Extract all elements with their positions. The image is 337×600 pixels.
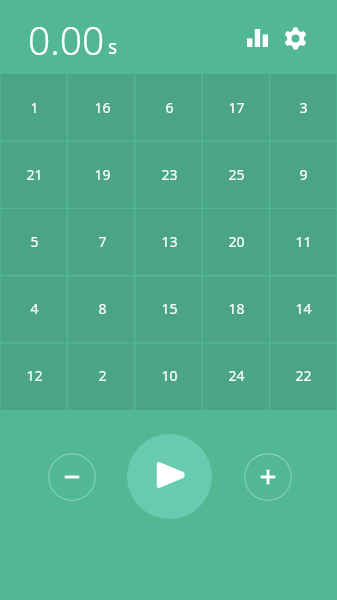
button[interactable]: Settings [279,21,311,53]
button[interactable]: 18 [203,276,270,343]
button[interactable]: 6 [136,74,203,142]
staticText: s [108,34,118,60]
staticText: 25 [228,165,245,184]
staticText: 7 [98,232,107,251]
button[interactable]: 4 [0,276,68,343]
button[interactable]: 14 [270,276,337,343]
button[interactable]: 10 [136,343,203,410]
staticText: 4 [30,299,39,318]
staticText: 14 [295,299,312,318]
staticText: 16 [94,98,111,117]
button[interactable]: 9 [270,142,337,209]
staticText: 3 [299,98,308,117]
staticText: 23 [161,165,178,184]
button[interactable]: 11 [270,209,337,276]
button[interactable]: 21 [0,142,68,209]
button[interactable]: 22 [270,343,337,410]
staticText: 9 [299,165,308,184]
button[interactable]: 23 [136,142,203,209]
button[interactable]: 8 [68,276,136,343]
staticText: 2 [98,366,107,385]
staticText: 21 [26,165,43,184]
staticText: 12 [26,366,43,385]
staticText: 0.00 [28,13,105,66]
button[interactable]: 7 [68,209,136,276]
button[interactable]: 17 [203,74,270,142]
button[interactable]: 1 [0,74,68,142]
staticText: 1 [30,98,39,117]
button[interactable]: Increase [244,453,292,501]
staticText: 13 [161,232,178,251]
staticText: 24 [228,366,245,385]
staticText: 18 [228,299,245,318]
button[interactable]: 13 [136,209,203,276]
button[interactable]: 12 [0,343,68,410]
button[interactable]: Decrease [48,453,96,501]
staticText: 5 [30,232,39,251]
staticText: 17 [228,98,245,117]
button[interactable]: 16 [68,74,136,142]
staticText: 8 [98,299,107,318]
staticText: 10 [161,366,178,385]
staticText: 20 [228,232,245,251]
button[interactable]: 5 [0,209,68,276]
staticText: 6 [165,98,174,117]
staticText: 11 [295,232,312,251]
button[interactable]: 25 [203,142,270,209]
button[interactable]: 19 [68,142,136,209]
button[interactable]: Start [127,434,212,519]
button[interactable]: 15 [136,276,203,343]
button[interactable]: Statistics [241,21,273,53]
button[interactable]: 3 [270,74,337,142]
button[interactable]: 2 [68,343,136,410]
staticText: 15 [161,299,178,318]
button[interactable]: 24 [203,343,270,410]
button[interactable]: 20 [203,209,270,276]
staticText: 22 [295,366,312,385]
staticText: 19 [94,165,111,184]
